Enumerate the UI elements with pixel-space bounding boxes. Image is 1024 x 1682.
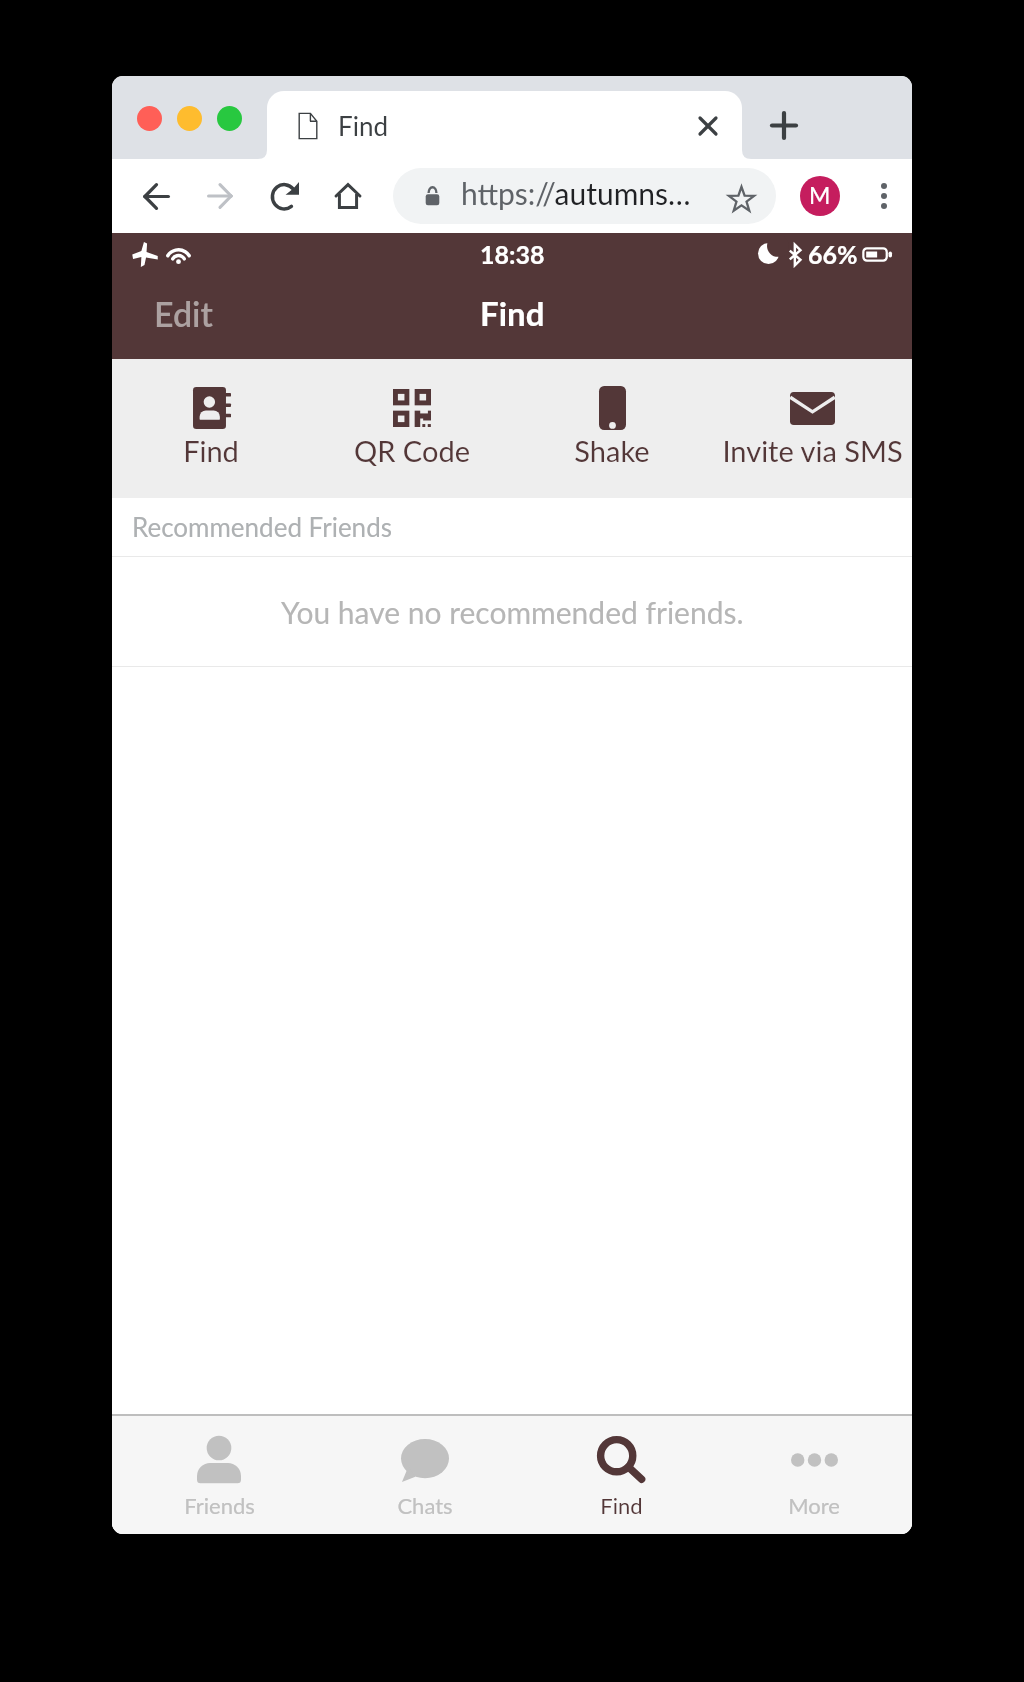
staticText: Recommended Friends (132, 511, 392, 542)
staticText: M (809, 181, 831, 209)
button[interactable]: Chats (325, 1416, 525, 1534)
button[interactable]: Profile (800, 176, 840, 216)
button[interactable]: Shake (512, 359, 712, 498)
staticText: More (788, 1492, 840, 1518)
button[interactable]: Find (112, 359, 311, 498)
staticText: 18:38 (480, 239, 545, 269)
button[interactable]: More (714, 1416, 912, 1534)
button[interactable]: Friends (119, 1416, 319, 1534)
button[interactable]: More options (864, 176, 904, 216)
button[interactable]: Close tab (688, 106, 728, 146)
staticText: Find (183, 433, 239, 468)
staticText: QR Code (354, 433, 470, 468)
button[interactable]: Reload (261, 172, 309, 220)
staticText: Friends (184, 1492, 255, 1518)
button[interactable]: Back (132, 172, 180, 220)
staticText: Invite via SMS (722, 433, 903, 468)
button[interactable]: Forward (196, 172, 244, 220)
staticText: Find (600, 1492, 643, 1518)
staticText: Chats (397, 1492, 453, 1518)
button[interactable]: QR Code (312, 359, 512, 498)
button[interactable]: Find (267, 91, 742, 159)
staticText: 66% (808, 239, 858, 269)
staticText: Find (480, 293, 545, 333)
button[interactable]: Invite via SMS (712, 359, 912, 498)
staticText: Find (338, 110, 388, 141)
button[interactable]: New tab (758, 99, 810, 151)
button[interactable]: Edit (136, 275, 236, 359)
staticText: https://autumns… (461, 175, 691, 211)
button[interactable]: https://autumns… (393, 168, 776, 224)
staticText: Shake (574, 433, 650, 468)
button[interactable]: Find (521, 1416, 721, 1534)
staticText: Edit (154, 293, 213, 334)
button[interactable]: Home (324, 172, 372, 220)
staticText: You have no recommended friends. (281, 594, 744, 630)
